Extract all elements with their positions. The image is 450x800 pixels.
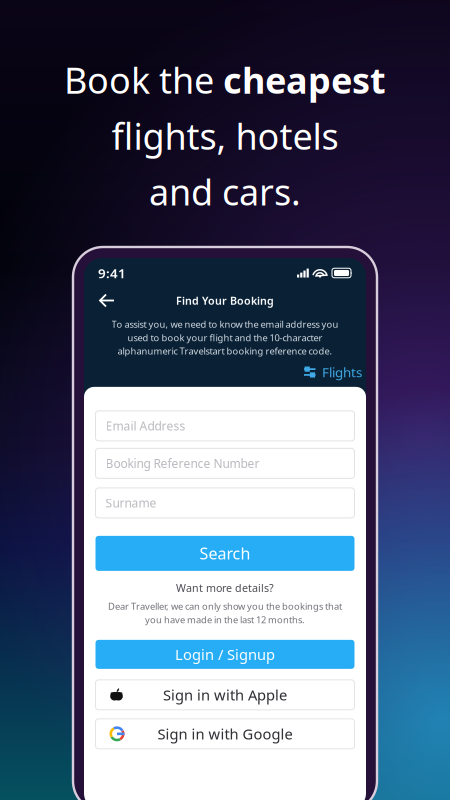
staticText: Login / Signup [175,645,275,664]
staticText: and cars. [149,168,301,215]
button[interactable]: Email Address [95,411,354,441]
button[interactable]: Flights [303,360,362,384]
staticText: Search [199,543,250,564]
staticText: you have made in the last 12 months. [145,613,305,626]
staticText: Booking Reference Number [105,455,259,471]
staticText: Dear Traveller, we can only show you the… [108,600,342,612]
staticText: Book the [64,56,223,104]
staticText: To assist you, we need to know the email… [111,318,338,330]
staticText: used to book your flight and the 10-char… [127,331,322,344]
button[interactable]: Booking Reference Number [95,448,354,478]
button[interactable]: Sign in with Google [95,719,354,749]
staticText: Want more details? [176,581,274,595]
button[interactable]: Surname [95,488,354,518]
button[interactable]: Back [92,288,122,312]
staticText: Sign in with Apple [163,685,287,705]
staticText: Email Address [105,418,185,434]
staticText: Flights [322,363,362,381]
staticText: Find Your Booking [176,293,274,308]
staticText: 9:41 [98,264,126,282]
staticText: cheapest [223,56,386,104]
staticText: Sign in with Google [157,724,292,744]
button[interactable]: Login / Signup [95,640,354,669]
button[interactable]: Sign in with Apple [95,680,354,710]
staticText: Surname [105,495,156,511]
staticText: flights, hotels [111,112,338,160]
button[interactable]: Search [95,536,354,571]
staticText: alphanumeric Travelstart booking referen… [117,345,332,357]
